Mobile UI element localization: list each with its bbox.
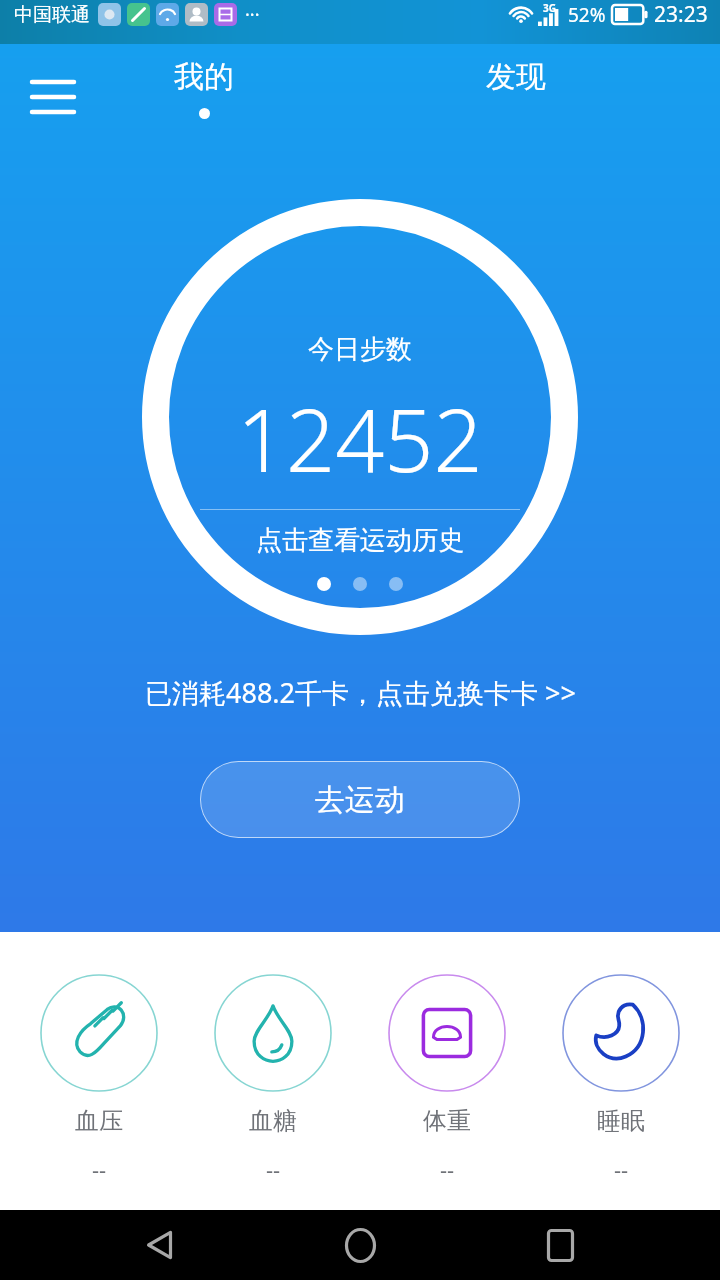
staticText: ··· bbox=[245, 2, 260, 27]
staticText: 去运动 bbox=[315, 781, 405, 819]
staticText: -- bbox=[92, 1154, 107, 1184]
button[interactable]: 已消耗488.2千卡，点击兑换卡卡 >> bbox=[0, 668, 720, 716]
button[interactable]: Menu bbox=[20, 62, 86, 132]
button[interactable]: 血压 bbox=[24, 974, 174, 1184]
staticText: 今日步数 bbox=[308, 333, 412, 366]
staticText: 23:23 bbox=[654, 0, 708, 29]
staticText: 我的 bbox=[174, 58, 234, 96]
staticText: 12452 bbox=[237, 380, 483, 497]
staticText: -- bbox=[266, 1154, 281, 1184]
staticText: 3G bbox=[543, 1, 556, 15]
button[interactable]: 睡眠 bbox=[546, 974, 696, 1184]
button[interactable]: 体重 bbox=[372, 974, 522, 1184]
button[interactable]: Back bbox=[120, 1210, 200, 1280]
staticText: -- bbox=[440, 1154, 455, 1184]
staticText: -- bbox=[614, 1154, 629, 1184]
staticText: 点击查看运动历史 bbox=[256, 524, 464, 557]
button[interactable]: 发现 bbox=[452, 58, 580, 118]
staticText: 已消耗488.2千卡，点击兑换卡卡 >> bbox=[145, 674, 576, 711]
staticText: 中国联通 bbox=[14, 3, 90, 27]
button[interactable]: 血糖 bbox=[198, 974, 348, 1184]
button[interactable]: 我的 bbox=[140, 58, 268, 150]
staticText: 血压 bbox=[75, 1106, 123, 1136]
staticText: 血糖 bbox=[249, 1106, 297, 1136]
button[interactable]: Recent apps bbox=[520, 1210, 600, 1280]
button[interactable]: 去运动 bbox=[200, 761, 520, 838]
staticText: 体重 bbox=[423, 1106, 471, 1136]
button[interactable]: 今日步数 bbox=[142, 199, 578, 635]
staticText: 52% bbox=[568, 2, 606, 28]
button[interactable]: Home bbox=[320, 1210, 400, 1280]
staticText: 睡眠 bbox=[597, 1106, 645, 1136]
staticText: 发现 bbox=[486, 58, 546, 96]
